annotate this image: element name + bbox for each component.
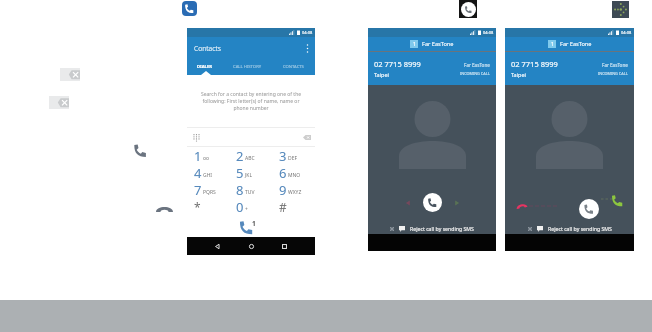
staticText: oo (203, 155, 210, 162)
button[interactable]: 2 (229, 147, 272, 164)
button[interactable]: 1 (187, 147, 229, 164)
staticText: Far EasTone (560, 40, 592, 48)
staticText: 1 (413, 41, 416, 48)
staticText: 04:08 (483, 30, 494, 35)
button[interactable]: 6 (272, 164, 315, 181)
staticText: * (194, 199, 201, 215)
staticText: 3 (279, 147, 287, 164)
button[interactable]: Call (239, 220, 259, 235)
staticText: DEF (288, 155, 298, 162)
button[interactable]: Recents (281, 243, 288, 250)
button[interactable]: Back (214, 243, 221, 250)
staticText: Reject call by sending SMS (410, 225, 474, 232)
staticText: 1 (252, 219, 256, 228)
staticText: Taipei (374, 71, 390, 78)
staticText: GHI (203, 172, 213, 179)
staticText: Far EasTone (422, 40, 454, 48)
staticText: CONTACTS (283, 64, 304, 70)
button[interactable]: Drag icon (612, 1, 629, 18)
staticText: TUV (245, 189, 255, 196)
button[interactable]: # (272, 198, 315, 215)
button[interactable]: Phone app icon (182, 1, 197, 16)
staticText: WXYZ (288, 189, 302, 196)
staticText: Taipei (511, 71, 527, 78)
staticText: MNO (288, 172, 301, 179)
staticText: Far EasTone (602, 62, 628, 68)
button[interactable]: 8 (229, 181, 272, 198)
button[interactable]: Answer call (423, 193, 442, 212)
staticText: 7 (194, 181, 202, 198)
staticText: 0 (236, 198, 244, 215)
button[interactable]: Answer call (579, 199, 599, 219)
staticText: CALL HISTORY (233, 64, 262, 70)
staticText: Search for a contact by entering one of … (196, 91, 306, 112)
button[interactable]: Reject call by sending SMS (505, 222, 634, 234)
staticText: INCOMING CALL (598, 71, 628, 76)
staticText: JKL (245, 172, 253, 179)
staticText: 1 (551, 41, 554, 48)
staticText: ABC (245, 155, 255, 162)
staticText: 2 (236, 147, 244, 164)
staticText: 02 7715 8999 (374, 59, 421, 69)
staticText: 04:08 (302, 30, 313, 35)
staticText: 5 (236, 164, 244, 181)
button[interactable]: Home (248, 243, 255, 250)
button[interactable]: 4 (187, 164, 229, 181)
staticText: Reject call by sending SMS (548, 225, 612, 232)
button[interactable]: 7 (187, 181, 229, 198)
button[interactable]: * (187, 198, 229, 215)
other: Decline call (516, 202, 527, 208)
other: Keypad (193, 134, 200, 141)
button[interactable]: Keypad (187, 128, 315, 146)
button[interactable]: Answer icon (459, 0, 477, 18)
staticText: # (279, 199, 287, 215)
staticText: 6 (279, 164, 287, 181)
staticText: DIALER (197, 64, 213, 70)
staticText: Contacts (194, 44, 221, 53)
button[interactable]: CALL HISTORY (223, 59, 271, 75)
staticText: Far EasTone (464, 62, 490, 68)
button[interactable]: More options (306, 44, 309, 53)
staticText: 9 (279, 181, 287, 198)
staticText: 04:08 (621, 30, 632, 35)
button[interactable]: 0 (229, 198, 272, 215)
button[interactable]: 5 (229, 164, 272, 181)
other: Backspace (303, 135, 311, 140)
staticText: 1 (194, 147, 202, 164)
staticText: INCOMING CALL (460, 71, 490, 76)
button[interactable]: CONTACTS (271, 59, 315, 75)
button[interactable]: 3 (272, 147, 315, 164)
button[interactable]: Reject call by sending SMS (368, 222, 496, 234)
staticText: 8 (236, 181, 244, 198)
staticText: + (245, 206, 248, 213)
staticText: PQRS (203, 189, 216, 196)
other: Answer call (611, 194, 624, 207)
staticText: 02 7715 8999 (511, 59, 558, 69)
button[interactable]: 9 (272, 181, 315, 198)
button[interactable]: DIALER (187, 59, 223, 75)
staticText: 4 (194, 164, 202, 181)
